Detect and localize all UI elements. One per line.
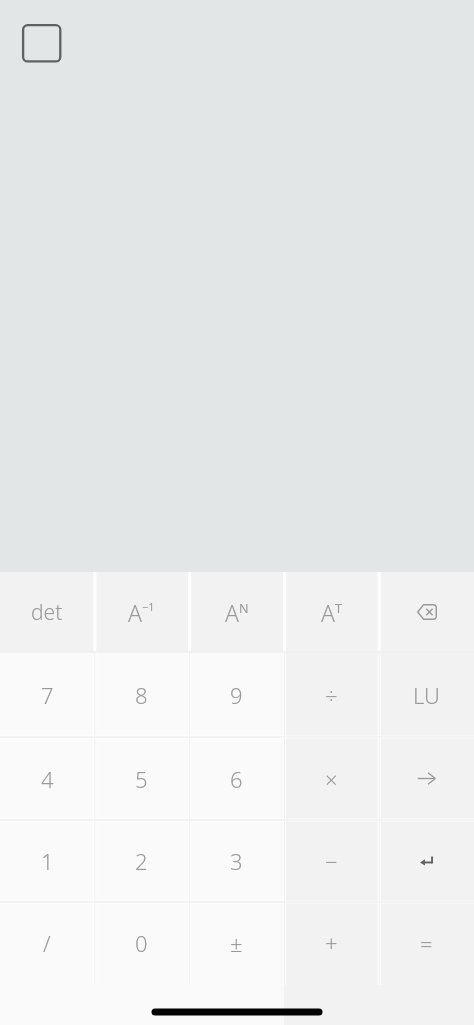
button[interactable]: AN [189,572,284,652]
staticText: + [325,928,338,958]
button[interactable]: Backspace [379,572,474,652]
button[interactable]: 5 [94,737,189,820]
button[interactable]: 9 [189,652,284,737]
staticText: 0 [135,928,148,958]
button[interactable]: Enter [379,820,474,902]
button[interactable]: ± [189,902,284,984]
button[interactable]: det [0,572,94,652]
staticText: AN [225,597,249,628]
staticText: 4 [41,764,54,794]
button[interactable]: = [379,902,474,984]
button[interactable]: LU [379,652,474,737]
button[interactable]: 6 [189,737,284,820]
staticText: A−1 [128,597,155,628]
staticText: 8 [135,680,148,710]
button[interactable]: / [0,902,94,984]
staticText: × [325,764,338,794]
button[interactable]: 7 [0,652,94,737]
staticText: 3 [230,846,243,876]
staticText: 6 [230,764,243,794]
button[interactable]: 1 [0,820,94,902]
staticText: 5 [135,764,148,794]
button[interactable]: 0 [94,902,189,984]
button[interactable]: Next [379,737,474,820]
staticText: = [420,928,433,958]
staticText: LU [413,680,440,710]
button[interactable]: AT [284,572,379,652]
staticText: 9 [230,680,243,710]
staticText: ± [230,928,243,958]
button[interactable]: 2 [94,820,189,902]
button[interactable]: 3 [189,820,284,902]
staticText: 1 [41,846,54,876]
staticText: 7 [41,680,54,710]
staticText: ÷ [325,680,338,710]
staticText: / [43,928,51,958]
button[interactable]: A−1 [94,572,189,652]
staticText: − [325,846,338,876]
staticText: det [31,598,63,627]
staticText: AT [321,597,343,628]
button[interactable]: + [284,902,379,984]
staticText: 2 [135,846,148,876]
button[interactable]: 4 [0,737,94,820]
button[interactable]: ÷ [284,652,379,737]
button[interactable]: × [284,737,379,820]
button[interactable]: − [284,820,379,902]
button[interactable]: 8 [94,652,189,737]
